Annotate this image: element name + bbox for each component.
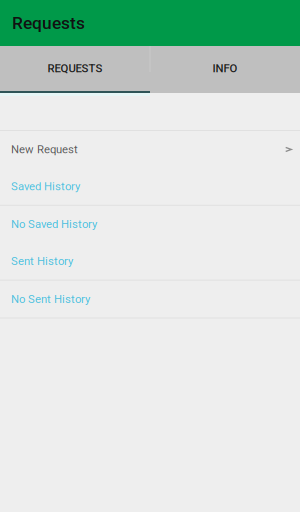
button[interactable]: No Sent History	[0, 281, 300, 317]
button[interactable]: New Request	[0, 131, 300, 168]
staticText: No Saved History	[11, 218, 97, 231]
staticText: REQUESTS	[47, 62, 102, 75]
button[interactable]: REQUESTS	[0, 46, 150, 93]
staticText: Sent History	[11, 254, 73, 268]
button[interactable]: Saved History	[0, 168, 300, 205]
button[interactable]: No Saved History	[0, 206, 300, 243]
staticText: Saved History	[11, 180, 80, 193]
staticText: New Request	[11, 143, 78, 156]
button[interactable]: Sent History	[0, 243, 300, 280]
staticText: No Sent History	[11, 292, 90, 306]
staticText: INFO	[212, 62, 237, 75]
button[interactable]: INFO	[150, 46, 300, 93]
staticText: Requests	[12, 13, 85, 33]
